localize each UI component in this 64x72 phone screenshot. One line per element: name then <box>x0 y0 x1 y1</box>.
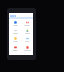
button[interactable]: apps <box>10 14 16 17</box>
button[interactable]: Photos <box>22 46 32 52</box>
button[interactable]: Meet <box>10 29 20 35</box>
staticText: Photos <box>24 49 31 52</box>
staticText: Keep <box>13 40 18 43</box>
button[interactable]: Duo <box>22 37 32 43</box>
staticText: Chat <box>13 24 18 27</box>
button[interactable]: Chat <box>10 21 20 27</box>
button[interactable]: Keep <box>10 37 20 43</box>
staticText: Gmail <box>24 24 30 27</box>
button[interactable]: Gmail <box>22 21 32 27</box>
staticText: Duo <box>25 40 29 43</box>
staticText: Drive <box>25 32 30 35</box>
button[interactable]: Drive <box>22 29 32 35</box>
staticText: apps <box>10 14 16 17</box>
staticText: Slides <box>12 49 18 52</box>
button[interactable]: Slides <box>10 46 20 52</box>
staticText: Meet <box>13 32 18 35</box>
